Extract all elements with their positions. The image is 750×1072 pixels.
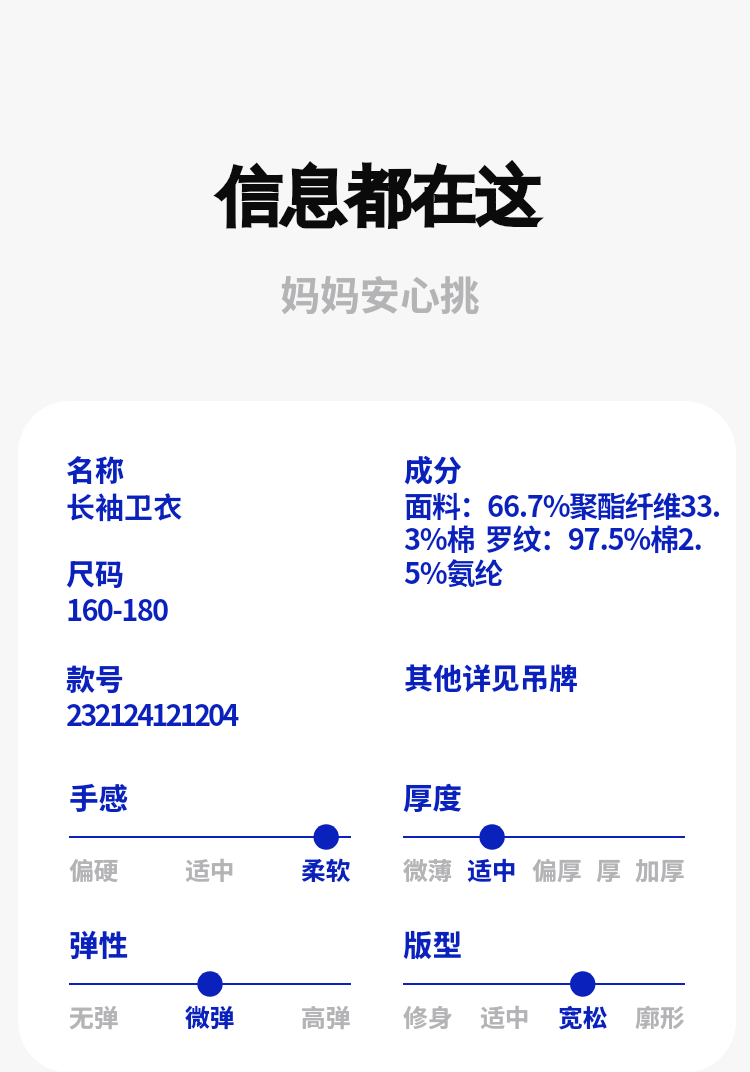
staticText: 面料：66.7%聚酯纤维33. 3%棉 罗纹：97.5%棉2. 5%氨纶 <box>404 483 720 592</box>
button[interactable]: 适中 <box>480 998 530 1034</box>
button[interactable]: 手感 滑块 <box>69 824 351 850</box>
staticText: 偏厚 <box>532 851 582 887</box>
staticText: 尺码 <box>66 551 125 593</box>
staticText: 手感 <box>69 775 129 818</box>
staticText: 长袖卫衣 <box>66 484 183 526</box>
staticText: 适中 <box>467 851 517 887</box>
button[interactable]: 名称 <box>18 401 736 1072</box>
staticText: 无弹 <box>69 998 119 1034</box>
staticText: 成分 <box>404 447 463 489</box>
button[interactable]: 适中 <box>185 851 235 887</box>
staticText: 廓形 <box>635 998 685 1034</box>
button[interactable]: 廓形 <box>635 998 685 1034</box>
staticText: 厚 <box>596 851 621 887</box>
staticText: 加厚 <box>635 851 685 887</box>
staticText: 柔软 <box>301 851 351 887</box>
button[interactable]: 适中 <box>467 851 517 887</box>
staticText: 高弹 <box>301 998 351 1034</box>
staticText: 微薄 <box>403 851 453 887</box>
button[interactable]: 厚 <box>596 851 621 887</box>
staticText: 信息都在这 <box>3 157 750 238</box>
button[interactable]: 版型 滑块 <box>403 971 685 997</box>
button[interactable]: 微弹 <box>185 998 235 1034</box>
button[interactable]: 高弹 <box>301 998 351 1034</box>
staticText: 适中 <box>185 851 235 887</box>
staticText: 版型 <box>403 922 463 965</box>
staticText: 款号 <box>66 656 125 698</box>
staticText: 厚度 <box>403 775 463 818</box>
button[interactable]: 加厚 <box>635 851 685 887</box>
button[interactable]: 弹性 滑块 <box>69 971 351 997</box>
button[interactable]: 微薄 <box>403 851 453 887</box>
staticText: 妈妈安心挑 <box>5 264 750 322</box>
button[interactable]: 偏厚 <box>532 851 582 887</box>
button[interactable]: 偏硬 <box>69 851 119 887</box>
staticText: 其他详见吊牌 <box>404 655 579 697</box>
staticText: 偏硬 <box>69 851 119 887</box>
button[interactable]: 宽松 <box>558 998 608 1034</box>
staticText: 232124121204 <box>66 692 237 734</box>
button[interactable]: 厚度 滑块 <box>403 824 685 850</box>
staticText: 宽松 <box>558 998 608 1034</box>
button[interactable]: 修身 <box>403 998 453 1034</box>
staticText: 微弹 <box>185 998 235 1034</box>
staticText: 名称 <box>66 447 125 489</box>
staticText: 160-180 <box>66 587 168 629</box>
staticText: 适中 <box>480 998 530 1034</box>
staticText: 修身 <box>403 998 453 1034</box>
button[interactable]: 柔软 <box>301 851 351 887</box>
button[interactable]: 无弹 <box>69 998 119 1034</box>
staticText: 弹性 <box>69 922 129 965</box>
